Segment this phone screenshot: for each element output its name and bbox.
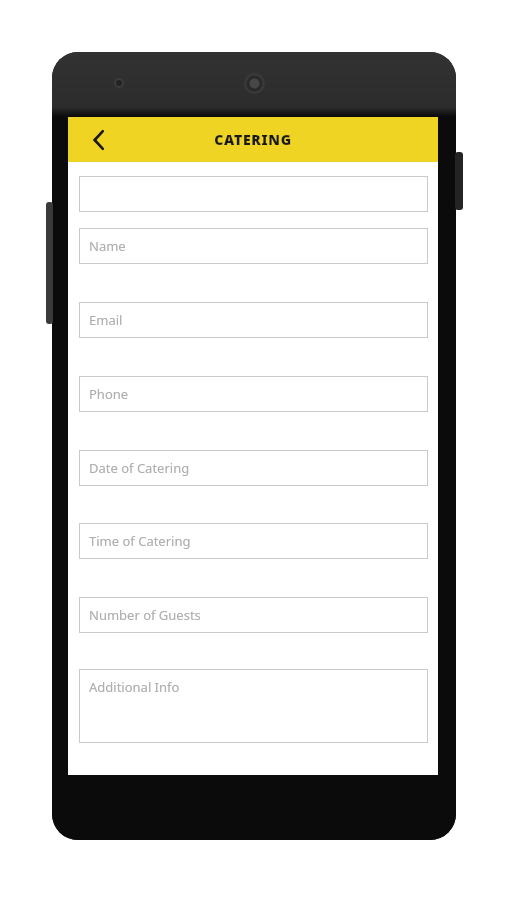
staticText: Additional Info <box>89 678 180 696</box>
staticText: Email <box>89 311 123 329</box>
staticText: Number of Guests <box>89 606 201 624</box>
button[interactable]: Back <box>76 117 122 162</box>
button[interactable] <box>79 176 428 212</box>
button[interactable]: Phone <box>79 376 428 412</box>
button[interactable]: Date of Catering <box>79 450 428 486</box>
staticText: Name <box>89 237 126 255</box>
button[interactable]: Name <box>79 228 428 264</box>
button[interactable]: Email <box>79 302 428 338</box>
button[interactable]: Additional Info <box>79 669 428 743</box>
staticText: CATERING <box>214 130 292 149</box>
button[interactable]: Time of Catering <box>79 523 428 559</box>
staticText: Phone <box>89 385 129 403</box>
staticText: Time of Catering <box>89 532 191 550</box>
staticText: Date of Catering <box>89 459 190 477</box>
button[interactable]: Number of Guests <box>79 597 428 633</box>
